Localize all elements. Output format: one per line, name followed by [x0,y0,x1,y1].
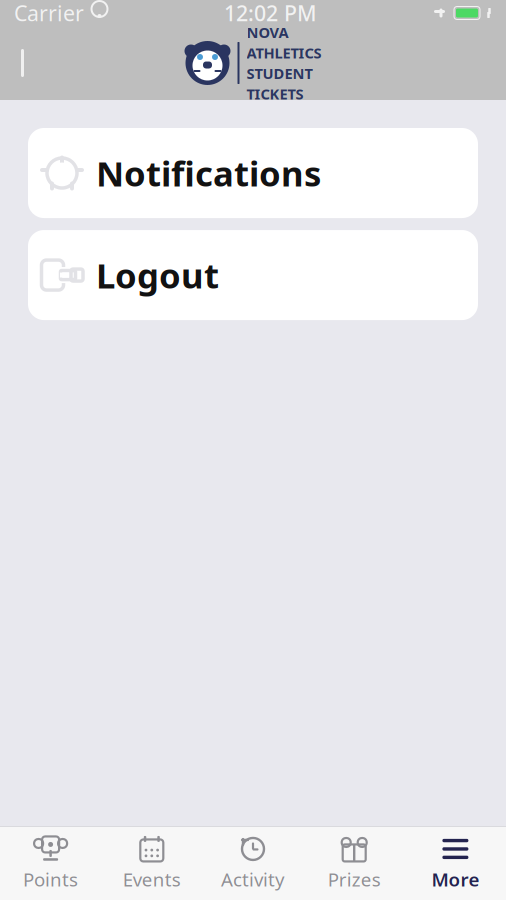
button[interactable]: Events [101,827,202,900]
button[interactable]: Logout [28,230,478,320]
staticText: STUDENT [246,63,312,83]
button[interactable]: Notifications [28,128,478,218]
staticText: Events [123,867,181,892]
button[interactable]: Back [0,37,46,89]
staticText: Logout [96,252,219,298]
staticText: Notifications [96,150,321,196]
button[interactable]: Prizes [304,827,405,900]
button[interactable]: Activity [202,827,304,900]
staticText: Prizes [328,867,381,892]
staticText: Activity [221,867,285,892]
button[interactable]: Points [0,827,101,900]
button[interactable]: More [405,827,506,900]
staticText: NOVA [246,22,288,42]
staticText: TICKETS [246,84,303,103]
staticText: Points [23,867,78,892]
staticText: Carrier [14,0,84,27]
staticText: ATHLETICS [246,43,321,62]
staticText: More [431,867,479,892]
staticText: 12:02 PM [224,0,317,27]
